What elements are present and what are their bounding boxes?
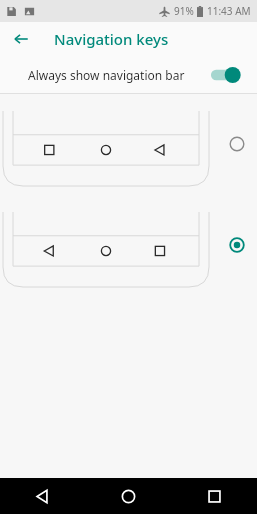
button[interactable]: Back — [8, 26, 34, 52]
button[interactable] — [0, 212, 257, 294]
staticText: 11:43 AM — [207, 4, 251, 18]
staticText: Always show navigation bar — [28, 67, 209, 83]
staticText: 91% — [174, 4, 194, 18]
button[interactable]: Home — [85, 478, 171, 514]
button[interactable]: Always show navigation bar — [0, 56, 257, 93]
button[interactable]: Back — [0, 478, 85, 514]
button[interactable] — [0, 111, 257, 193]
button[interactable]: Recent apps — [171, 478, 257, 514]
staticText: Navigation keys — [54, 29, 169, 49]
